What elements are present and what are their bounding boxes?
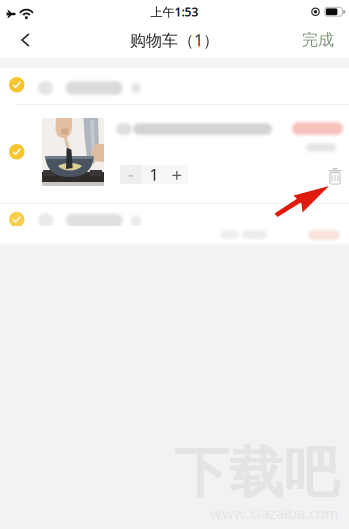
button[interactable] [0, 204, 349, 226]
button[interactable]: 选择商品 [9, 144, 24, 159]
staticText: 购物车（1） [130, 29, 219, 51]
button[interactable]: 删除 [322, 163, 348, 189]
button[interactable]: 减少数量 [120, 165, 142, 184]
staticText: + [171, 162, 182, 187]
staticText: www.xiazaiba.com [210, 503, 339, 523]
staticText: 1 [149, 164, 158, 185]
staticText: - [128, 163, 134, 186]
button[interactable]: 完成 [295, 22, 341, 58]
button[interactable] [0, 68, 349, 104]
staticText: 下载吧 [174, 439, 339, 506]
button[interactable]: 商品图片 [42, 118, 104, 186]
staticText: 上午1:53 [150, 4, 198, 20]
button[interactable]: 返回 [0, 22, 51, 58]
staticText: 完成 [302, 30, 334, 50]
button[interactable]: 增加数量 [166, 165, 188, 184]
